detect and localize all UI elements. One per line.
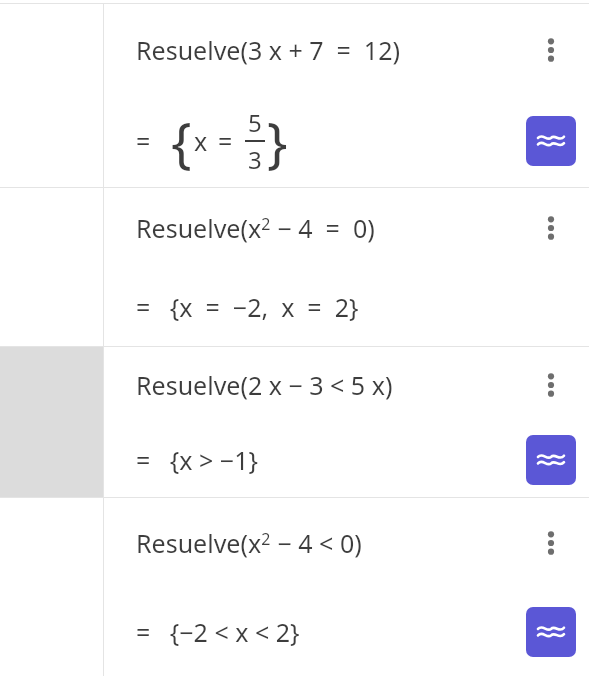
staticText: x2 [248, 526, 271, 560]
staticText: { [171, 104, 192, 178]
staticText: Resuelve( [136, 526, 248, 560]
staticText: Resuelve(3 x + 7 = 12) [136, 33, 400, 67]
button[interactable]: Numeric approximation [526, 116, 576, 166]
button[interactable]: More options [529, 206, 573, 250]
staticText: 3 [248, 143, 262, 176]
button[interactable]: Numeric approximation [526, 607, 576, 657]
staticText: 5 [248, 106, 262, 139]
staticText: − 4 = 0) [271, 211, 375, 245]
staticText: } [267, 104, 288, 178]
button[interactable]: Resuelve( [104, 498, 589, 676]
staticText: = [136, 124, 151, 158]
button[interactable]: More options [529, 28, 573, 72]
staticText: = [218, 124, 233, 158]
staticText: Resuelve(2 x − 3 < 5 x) [136, 368, 393, 402]
staticText: = {−2 < x < 2} [136, 615, 300, 649]
button[interactable]: Resuelve(3 x + 7 = 12) [104, 4, 589, 187]
staticText: = {x > −1} [136, 443, 258, 477]
button[interactable]: Numeric approximation [526, 435, 576, 485]
staticText: x2 [248, 211, 271, 245]
staticText: = {x = −2, x = 2} [136, 290, 359, 324]
staticText: Resuelve( [136, 211, 248, 245]
staticText: − 4 < 0) [271, 526, 362, 560]
button[interactable]: More options [529, 363, 573, 407]
button[interactable]: Resuelve(2 x − 3 < 5 x) [104, 347, 589, 497]
button[interactable]: Resuelve( [104, 188, 589, 346]
button[interactable]: More options [529, 521, 573, 565]
staticText: x [194, 124, 208, 158]
